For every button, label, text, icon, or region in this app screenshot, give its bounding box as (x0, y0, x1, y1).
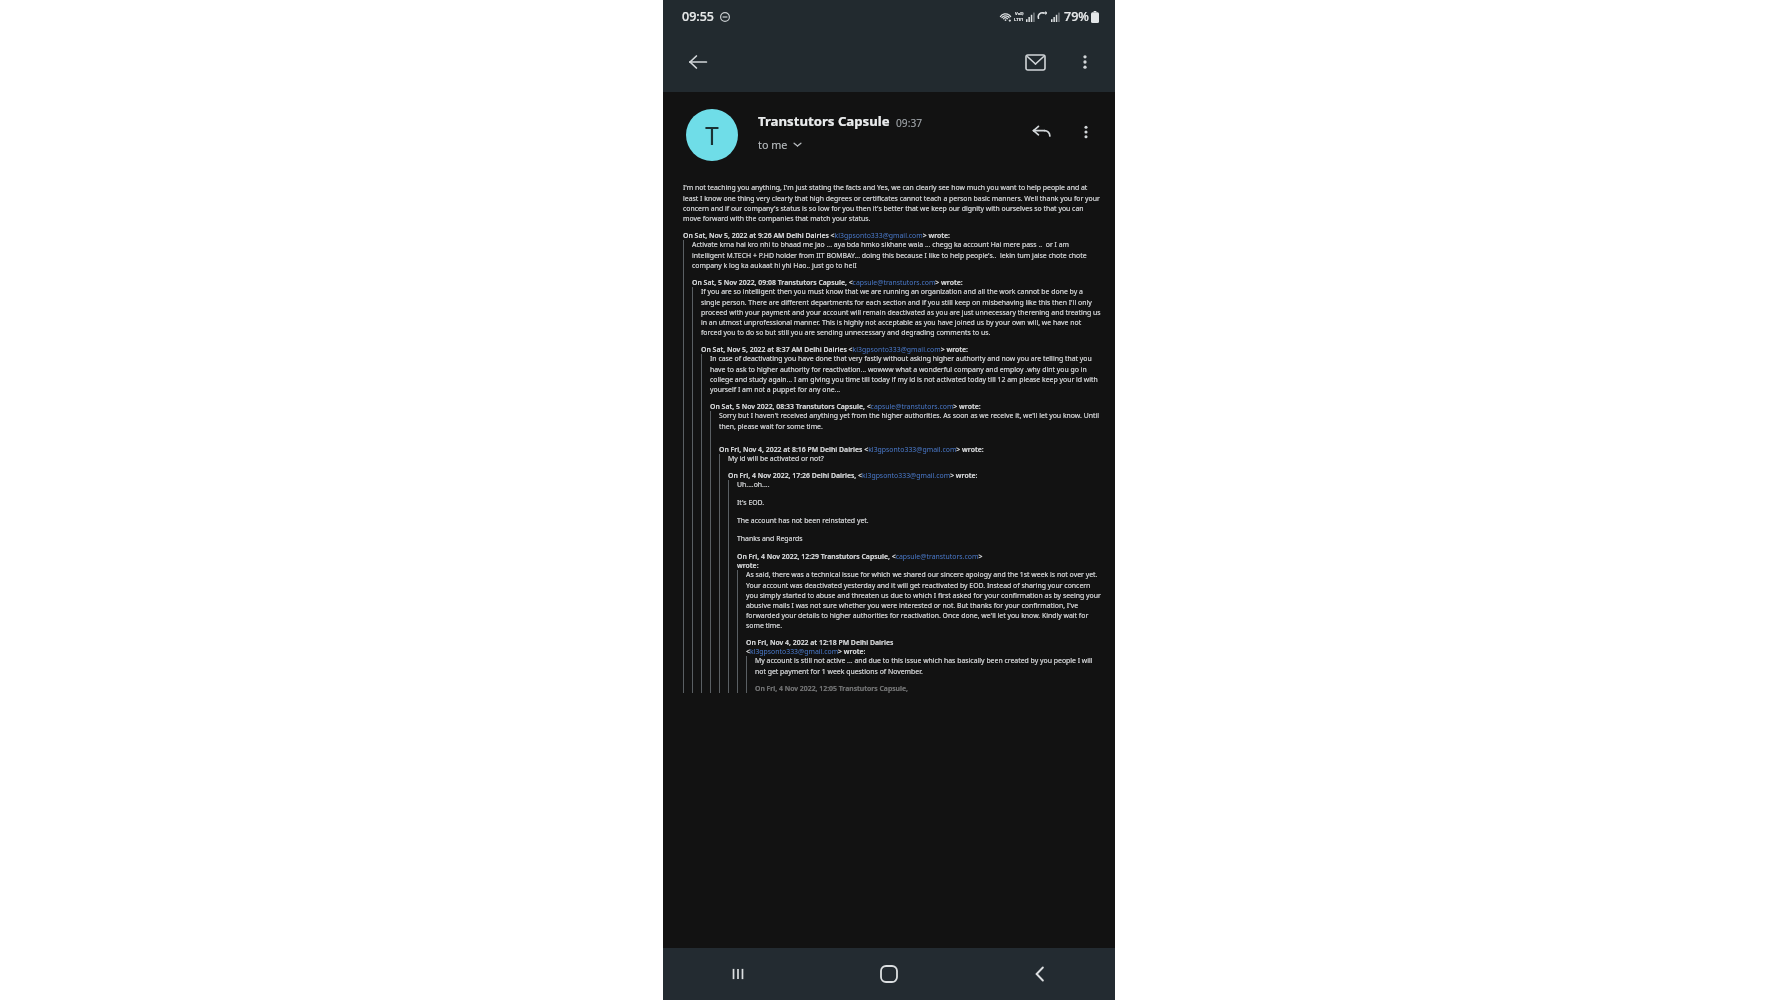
staticText: My id will be activated or not? (728, 454, 824, 463)
staticText: On Fri, 4 Nov 2022, 12:05 Transtutors Ca… (755, 684, 908, 693)
staticText: It's EOD. (737, 498, 765, 507)
button[interactable]: More options (1069, 46, 1101, 78)
button[interactable]: Sender avatar (686, 109, 738, 161)
button[interactable]: Back (681, 45, 715, 79)
staticText: T (705, 118, 719, 152)
staticText: On Sat, 5 Nov 2022, 09:08 Transtutors Ca… (692, 278, 963, 287)
staticText: If you are so intelligent then you must … (701, 287, 1101, 337)
staticText: The account has not been reinstated yet. (737, 516, 869, 525)
button[interactable]: More options (1071, 117, 1101, 147)
staticText: On Sat, Nov 5, 2022 at 9:26 AM Delhi Dai… (683, 231, 950, 240)
staticText: 09:55 (682, 8, 715, 25)
staticText: On Fri, 4 Nov 2022, 17:26 Delhi Dairies,… (728, 471, 978, 480)
staticText: I'm not teaching you anything, I'm just … (683, 183, 1101, 223)
staticText: As said, there was a technical issue for… (746, 570, 1101, 630)
staticText: VoI) (1015, 11, 1024, 17)
staticText: 09:37 (896, 116, 923, 130)
button[interactable]: Mark as unread (1017, 44, 1053, 80)
staticText: to me (758, 137, 788, 152)
button[interactable]: Recent apps (663, 948, 813, 1000)
staticText: <kl3gpsonto333@gmail.com> wrote: (746, 647, 866, 656)
staticText: On Sat, Nov 5, 2022 at 8:37 AM Delhi Dai… (701, 345, 968, 354)
staticText: wrote: (737, 561, 759, 570)
button[interactable]: to me (758, 137, 802, 152)
staticText: On Fri, Nov 4, 2022 at 12:18 PM Delhi Da… (746, 638, 894, 647)
staticText: Thanks and Regards (737, 534, 803, 543)
staticText: Sorry but I haven't received anything ye… (719, 411, 1101, 431)
staticText: Uh....oh.... (737, 480, 770, 489)
staticText: LTE1 (1014, 17, 1024, 23)
staticText: Transtutors Capsule (758, 112, 890, 130)
staticText: My account is still not active ... and d… (755, 656, 1101, 676)
staticText: 79% (1064, 8, 1089, 25)
staticText: In case of deactivating you have done th… (710, 354, 1101, 394)
staticText: On Fri, Nov 4, 2022 at 8:16 PM Delhi Dai… (719, 445, 984, 454)
staticText: On Sat, 5 Nov 2022, 08:33 Transtutors Ca… (710, 402, 981, 411)
button[interactable]: Home (813, 948, 964, 1000)
button[interactable]: Reply (1024, 115, 1058, 149)
staticText: Activate krna hai kro nhi to bhaad me ja… (692, 240, 1101, 270)
button[interactable]: Back (964, 948, 1115, 1000)
staticText: On Fri, 4 Nov 2022, 12:29 Transtutors Ca… (737, 552, 983, 561)
